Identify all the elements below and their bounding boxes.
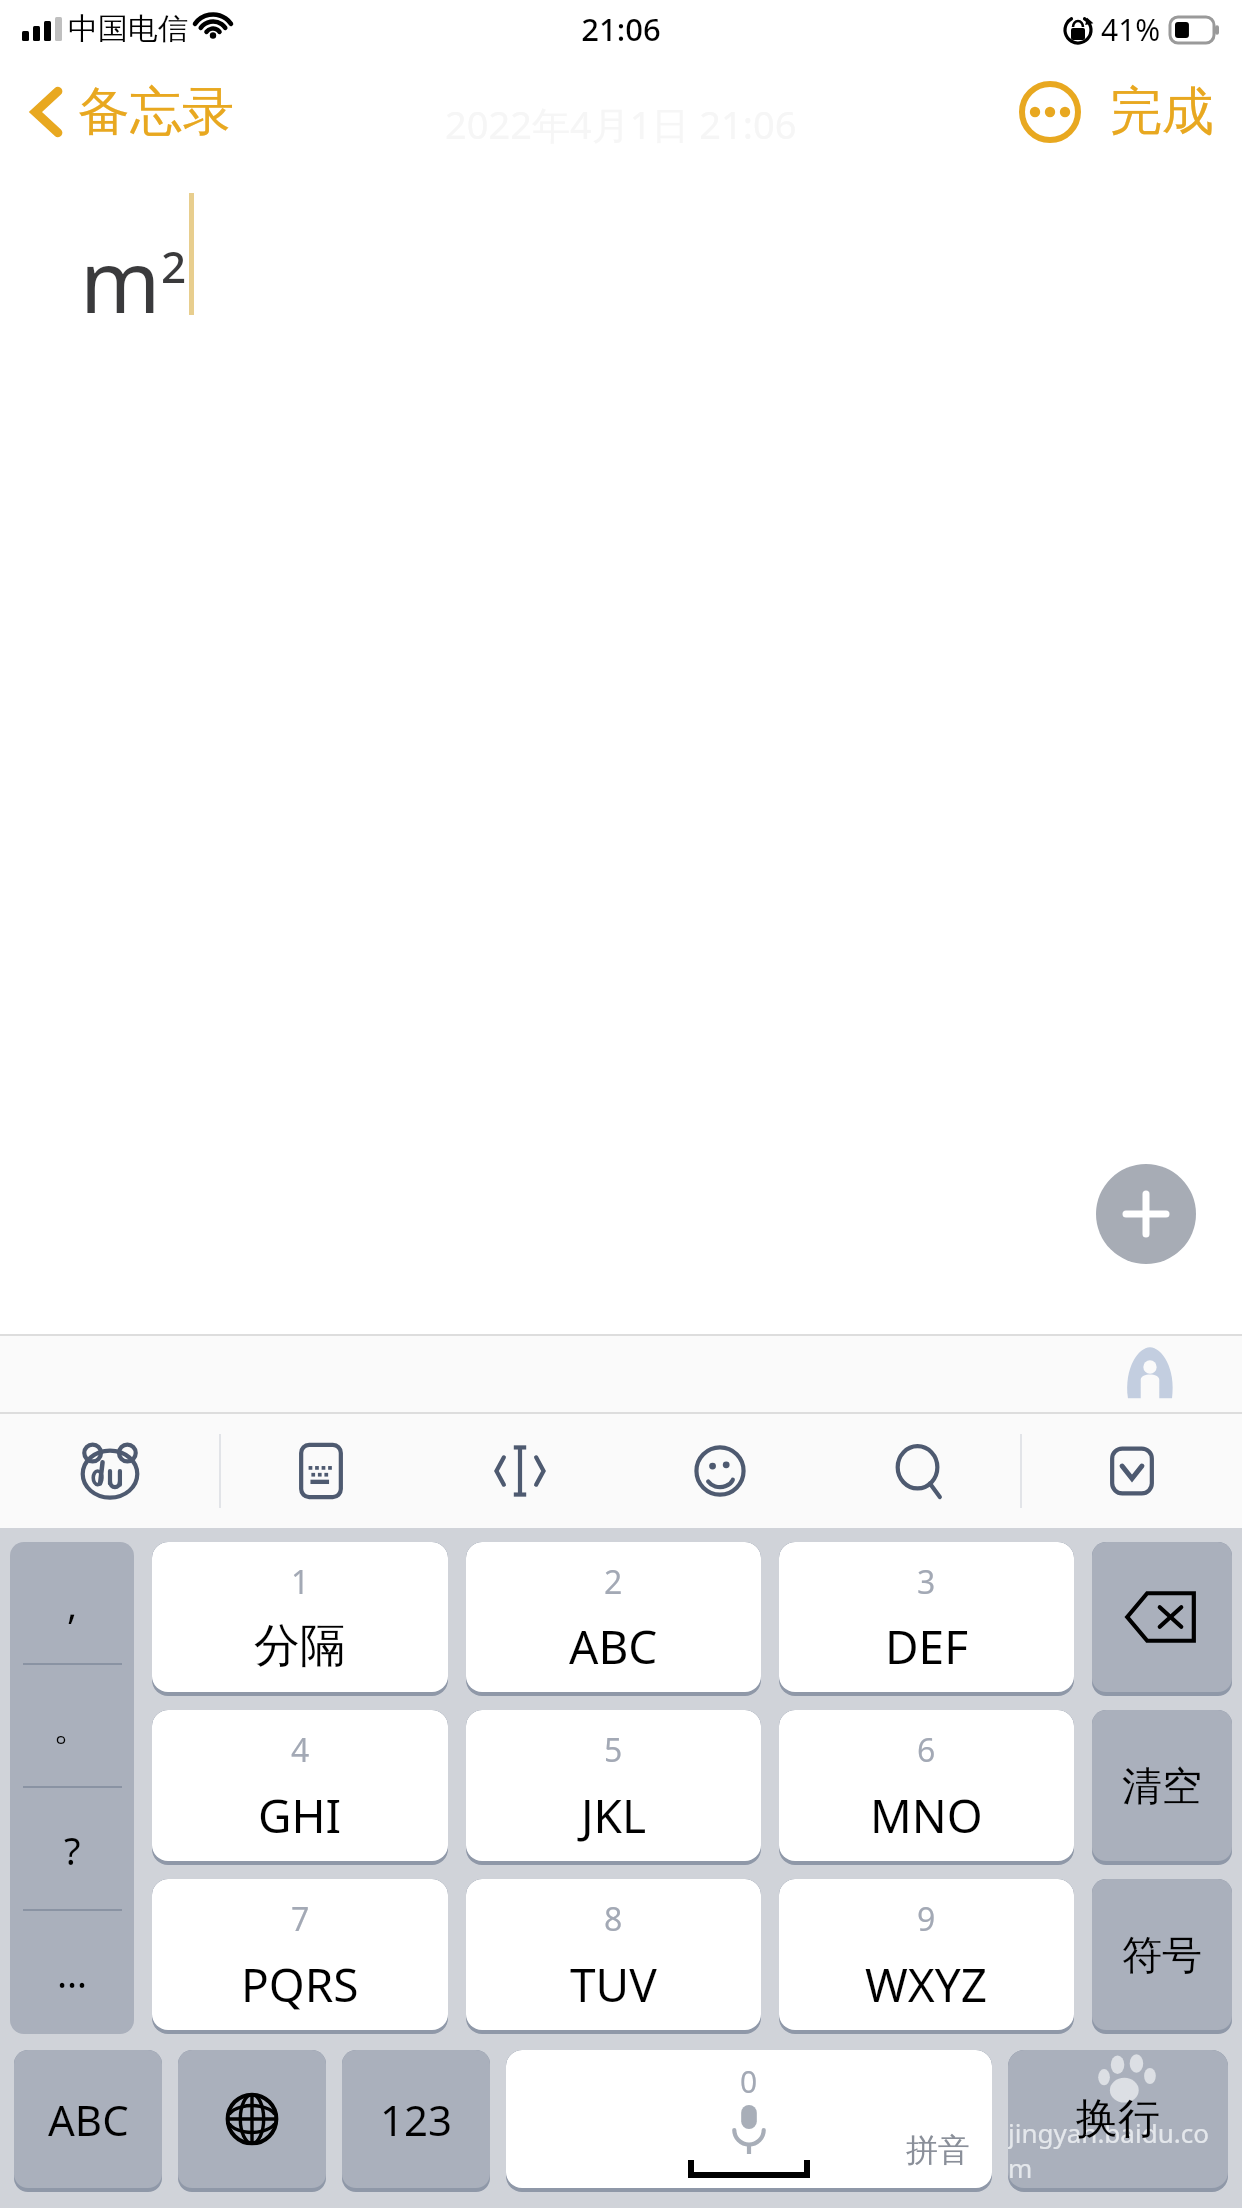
button[interactable]: , bbox=[10, 1542, 134, 1665]
staticText: 中国电信 bbox=[68, 10, 188, 48]
button[interactable]: 备忘录 bbox=[22, 73, 242, 151]
button[interactable]: 5 bbox=[466, 1710, 761, 1865]
staticText: ? bbox=[64, 1824, 81, 1876]
button[interactable]: 。 bbox=[10, 1665, 134, 1788]
button[interactable]: … bbox=[10, 1911, 134, 2034]
button[interactable]: Delete bbox=[1092, 1542, 1232, 1696]
staticText: 2 bbox=[161, 236, 187, 296]
button[interactable]: 符号 bbox=[1092, 1879, 1232, 2034]
staticText: 21:06 bbox=[581, 8, 661, 50]
button[interactable]: 8 bbox=[466, 1879, 761, 2034]
staticText: ABC bbox=[48, 2091, 129, 2148]
button[interactable]: More options bbox=[1018, 80, 1082, 144]
button[interactable]: 3 bbox=[779, 1542, 1074, 1696]
button[interactable]: Search bbox=[820, 1414, 1020, 1528]
button[interactable]: Switch language bbox=[178, 2050, 326, 2192]
button[interactable]: 6 bbox=[779, 1710, 1074, 1865]
button[interactable]: ABC bbox=[14, 2050, 162, 2192]
staticText: 。 bbox=[53, 1703, 91, 1751]
staticText: ABC bbox=[569, 1615, 658, 1678]
button[interactable]: 123 bbox=[342, 2050, 490, 2192]
staticText: jingyan.baidu.com bbox=[1008, 2115, 1228, 2185]
staticText: , bbox=[67, 1578, 78, 1630]
staticText: WXYZ bbox=[865, 1953, 988, 2016]
button[interactable]: 1 bbox=[152, 1542, 448, 1696]
staticText: 5 bbox=[604, 1728, 623, 1772]
staticText: 清空 bbox=[1122, 1761, 1202, 1811]
button[interactable]: 2 bbox=[466, 1542, 761, 1696]
staticText: 123 bbox=[380, 2091, 453, 2148]
button[interactable]: 完成 bbox=[1104, 71, 1220, 153]
button[interactable]: Keyboard layout bbox=[221, 1414, 420, 1528]
staticText: 4 bbox=[291, 1728, 310, 1772]
staticText: JKL bbox=[581, 1784, 647, 1847]
button[interactable]: Cursor move bbox=[420, 1414, 620, 1528]
staticText: 2022年4月1日 21:06 bbox=[445, 98, 797, 150]
button[interactable]: Add attachment bbox=[1096, 1164, 1196, 1264]
staticText: 41% bbox=[1101, 9, 1161, 50]
button[interactable]: 4 bbox=[152, 1710, 448, 1865]
button[interactable]: Input mode bbox=[1118, 1342, 1182, 1406]
button[interactable]: Hide keyboard bbox=[1022, 1414, 1242, 1528]
staticText: 符号 bbox=[1122, 1930, 1202, 1980]
staticText: m bbox=[80, 221, 161, 338]
button[interactable]: Emoji bbox=[620, 1414, 820, 1528]
button[interactable]: Baidu input bbox=[0, 1414, 219, 1528]
staticText: 完成 bbox=[1110, 79, 1214, 145]
staticText: 分隔 bbox=[254, 1617, 346, 1675]
staticText: TUV bbox=[570, 1953, 657, 2016]
button[interactable]: Space bbox=[506, 2050, 992, 2192]
button[interactable]: 9 bbox=[779, 1879, 1074, 2034]
staticText: MNO bbox=[870, 1784, 983, 1847]
staticText: 1 bbox=[291, 1560, 310, 1604]
staticText: 7 bbox=[291, 1897, 310, 1941]
button[interactable]: jingyan.baidu.com bbox=[1008, 2050, 1228, 2192]
staticText: DEF bbox=[885, 1615, 969, 1678]
staticText: 备忘录 bbox=[78, 79, 234, 145]
staticText: 2 bbox=[604, 1560, 623, 1604]
staticText: PQRS bbox=[241, 1953, 359, 2016]
staticText: 6 bbox=[917, 1728, 936, 1772]
staticText: 拼音 bbox=[906, 2130, 970, 2170]
staticText: … bbox=[57, 1947, 88, 1999]
staticText: 9 bbox=[917, 1897, 936, 1941]
staticText: 8 bbox=[604, 1897, 623, 1941]
button[interactable]: 7 bbox=[152, 1879, 448, 2034]
staticText: 换行 bbox=[1076, 2093, 1160, 2146]
staticText: 3 bbox=[917, 1560, 936, 1604]
button[interactable]: ? bbox=[10, 1788, 134, 1911]
button[interactable]: 清空 bbox=[1092, 1710, 1232, 1865]
staticText: GHI bbox=[258, 1784, 342, 1847]
staticText: 0 bbox=[740, 2061, 758, 2102]
